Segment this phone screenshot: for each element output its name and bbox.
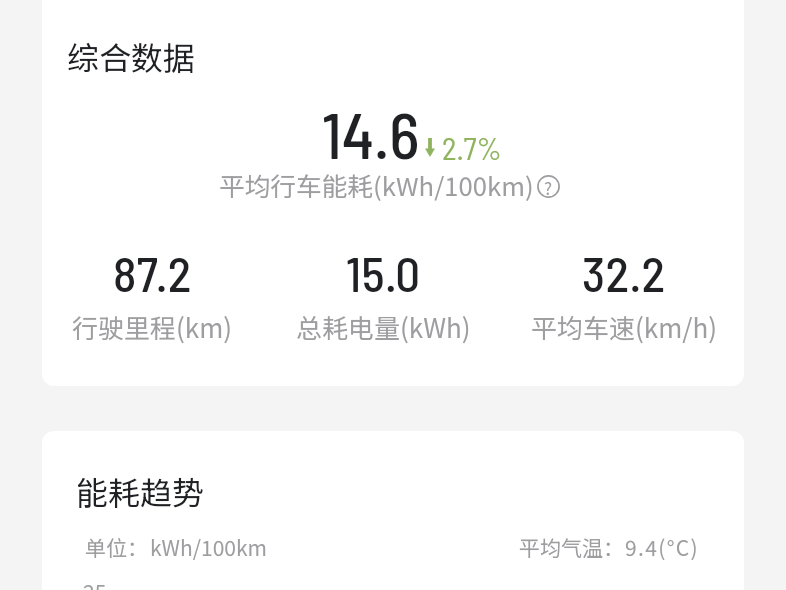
button[interactable] xyxy=(42,431,744,590)
staticText: 行驶里程(km) xyxy=(72,308,233,346)
staticText: 87.2 xyxy=(113,243,192,302)
staticText: 综合数据 xyxy=(67,33,196,79)
button[interactable]: 能耗说明 xyxy=(537,175,560,198)
staticText: 单位： xyxy=(85,532,148,562)
button[interactable] xyxy=(42,0,744,386)
staticText: 32.2 xyxy=(582,243,666,302)
staticText: ? xyxy=(544,175,553,198)
staticText: kWh/100km xyxy=(150,532,268,562)
button[interactable]: 32.2 xyxy=(508,243,739,346)
button[interactable]: 87.2 xyxy=(37,243,268,346)
staticText: 总耗电量(kWh) xyxy=(296,308,471,346)
staticText: 25 xyxy=(83,577,107,590)
staticText: 2.7% xyxy=(442,129,502,166)
other: 下降 xyxy=(425,138,435,157)
staticText: 平均车速(km/h) xyxy=(531,308,717,346)
staticText: 14.6 xyxy=(322,95,420,172)
staticText: 平均行车能耗(kWh/100km) xyxy=(219,166,534,203)
staticText: 能耗趋势 xyxy=(76,468,205,514)
button[interactable]: 15.0 xyxy=(268,243,499,346)
staticText: 平均气温： xyxy=(519,532,624,562)
staticText: 9.4(°C) xyxy=(625,532,699,562)
staticText: 15.0 xyxy=(346,243,421,302)
